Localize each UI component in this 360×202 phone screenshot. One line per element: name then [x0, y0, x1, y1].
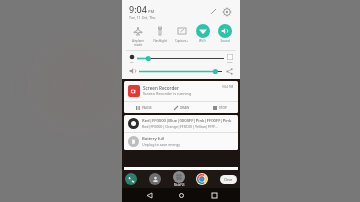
staticText: 9:04 PM: [222, 85, 234, 89]
button[interactable]: Apps: [173, 171, 185, 183]
staticText: Screen Recorder: [143, 85, 179, 91]
staticText: Red|FF0000|Blue|0000FF|Pink|FF00FF|Pink: [142, 118, 232, 124]
button[interactable]: Phone: [125, 173, 137, 185]
staticText: Screen Recorder is running: [143, 91, 192, 96]
staticText: Battery full: [142, 136, 165, 142]
button[interactable]: Sound: [214, 23, 235, 44]
staticText: Clear: [224, 177, 233, 182]
staticText: MobiPLS: [174, 183, 185, 187]
staticText: Flashlight: [153, 39, 167, 43]
staticText: Auto: [227, 60, 233, 63]
staticText: PAUSE: [142, 106, 152, 110]
staticText: STOP: [219, 106, 227, 110]
button[interactable]: Wi-Fi: [192, 23, 213, 44]
button[interactable]: Red|FF0000|Blue|0000FF|Pink|FF00FF|Pink: [124, 115, 238, 132]
button[interactable]: 0%: [129, 54, 233, 63]
button[interactable]: Screen Recorder: [124, 81, 238, 113]
staticText: DRAW: [180, 106, 190, 110]
button[interactable]: Capture+: [171, 23, 192, 44]
staticText: Red|FF0000| Orange|FF8C00| Yellow|FFFF..…: [142, 124, 218, 129]
button[interactable]: Chrome: [196, 173, 208, 185]
button[interactable]: PAUSE: [124, 102, 162, 113]
staticText: Sound: [220, 39, 230, 43]
button[interactable]: Flashlight: [149, 23, 170, 44]
staticText: Unplug to save energy: [142, 142, 181, 147]
button[interactable]: Battery full: [124, 133, 238, 150]
button[interactable]: Sound settings: [225, 67, 233, 75]
staticText: Wi-Fi: [199, 39, 206, 43]
staticText: Airplane mode: [132, 39, 144, 47]
staticText: 9:04: [129, 3, 147, 15]
button[interactable]: Edit quick settings: [207, 5, 220, 18]
button[interactable]: Back: [143, 189, 155, 201]
staticText: PM: [148, 9, 155, 14]
button[interactable]: STOP: [200, 102, 238, 113]
button[interactable]: Sound settings: [129, 67, 233, 75]
button[interactable]: Settings: [220, 5, 233, 18]
button[interactable]: Clear: [220, 175, 237, 184]
button[interactable]: Auto brightness: [227, 54, 233, 60]
staticText: 0%: [130, 60, 134, 63]
button[interactable]: Recents: [208, 189, 220, 201]
button[interactable]: DRAW: [162, 102, 200, 113]
button[interactable]: Home: [175, 189, 187, 201]
button[interactable]: Contacts: [149, 173, 161, 185]
staticText: Capture+: [175, 39, 188, 43]
button[interactable]: Airplane mode: [127, 23, 148, 48]
staticText: Tue, 11 Oct, Thu: [129, 15, 156, 20]
